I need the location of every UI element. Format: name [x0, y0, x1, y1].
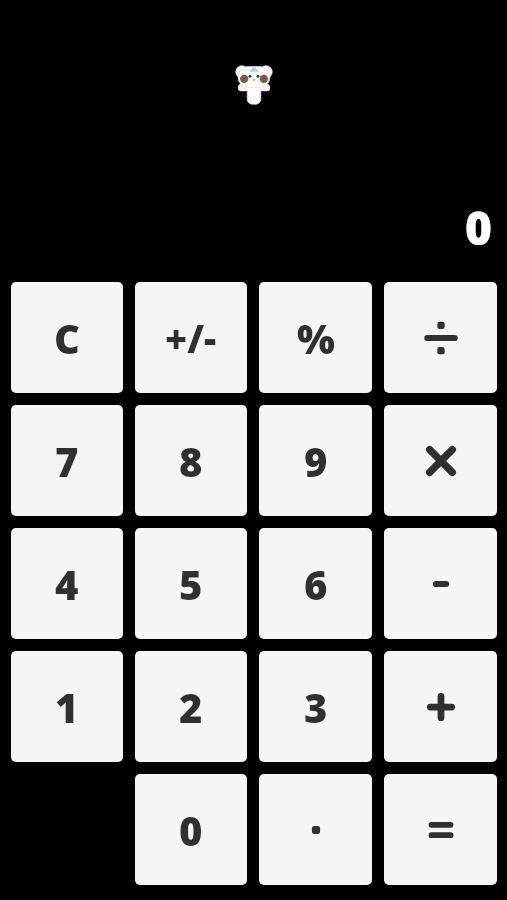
button[interactable]: 6: [259, 528, 372, 639]
button[interactable]: 7: [11, 405, 123, 516]
button[interactable]: Plus: [384, 651, 497, 762]
button[interactable]: 5: [135, 528, 247, 639]
button[interactable]: 2: [135, 651, 247, 762]
staticText: 7: [55, 434, 79, 488]
button[interactable]: Minus: [384, 528, 497, 639]
button[interactable]: %: [259, 282, 372, 393]
button[interactable]: Equals: [384, 774, 497, 885]
staticText: C: [54, 311, 80, 365]
staticText: 9: [304, 434, 328, 488]
staticText: 8: [179, 434, 203, 488]
staticText: 2: [179, 680, 203, 734]
button[interactable]: 8: [135, 405, 247, 516]
button[interactable]: 1: [11, 651, 123, 762]
other: Mascot: [234, 60, 274, 106]
staticText: 5: [179, 557, 203, 611]
button[interactable]: 9: [259, 405, 372, 516]
button[interactable]: 3: [259, 651, 372, 762]
button[interactable]: Divide: [384, 282, 497, 393]
button[interactable]: 0: [135, 774, 247, 885]
staticText: 3: [304, 680, 328, 734]
staticText: 4: [55, 557, 79, 611]
button[interactable]: Multiply: [384, 405, 497, 516]
staticText: 6: [304, 557, 328, 611]
staticText: 0: [465, 196, 492, 259]
button[interactable]: C: [11, 282, 123, 393]
button[interactable]: 4: [11, 528, 123, 639]
staticText: 1: [55, 680, 79, 734]
button[interactable]: Decimal point: [259, 774, 372, 885]
button[interactable]: Plus minus: [135, 282, 247, 393]
staticText: +/-: [165, 312, 217, 364]
staticText: %: [297, 311, 335, 365]
staticText: 0: [179, 803, 203, 857]
